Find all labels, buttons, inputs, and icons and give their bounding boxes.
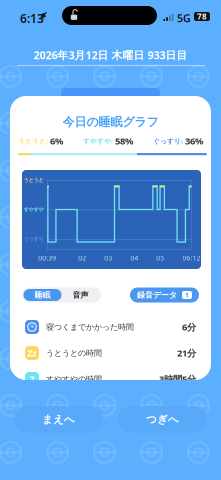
button[interactable]: Zz (10, 340, 211, 366)
staticText: 58% (113, 135, 133, 147)
button[interactable]: Z (10, 366, 211, 392)
staticText: Zz (27, 347, 37, 359)
staticText: 3時間5分 (159, 373, 196, 385)
button[interactable]: 睡眠 (23, 289, 61, 301)
staticText: 6分 (182, 321, 196, 333)
staticText: すやすやの時間 (46, 374, 102, 384)
staticText: 06:12 (182, 254, 200, 262)
staticText: すやすや (23, 206, 43, 213)
button[interactable]: 録音データ (130, 287, 199, 302)
staticText: 04 (130, 254, 138, 262)
staticText: うとうと: (18, 137, 48, 145)
staticText: つぎへ (146, 413, 179, 426)
staticText: 05 (156, 254, 164, 262)
staticText: 36% (183, 135, 203, 147)
staticText: 6:13 (20, 10, 44, 26)
staticText: 録音データ (137, 290, 177, 300)
staticText: 6% (48, 135, 63, 147)
staticText: Z (29, 373, 34, 385)
staticText: すやすや: (83, 137, 113, 145)
staticText: うとうと (23, 177, 43, 183)
staticText: 寝つくまでかかった時間 (46, 322, 134, 332)
button[interactable]: まえへ (14, 406, 103, 433)
staticText: 02 (78, 254, 86, 262)
staticText: ぐっすり (23, 236, 43, 242)
staticText: ぐっすり: (153, 137, 183, 145)
staticText: 5G (177, 11, 191, 25)
button[interactable]: つぎへ (118, 406, 207, 433)
staticText: 音声 (72, 290, 88, 300)
staticText: 1 (185, 291, 189, 299)
staticText: 03 (104, 254, 112, 262)
staticText: 78 (197, 11, 207, 22)
staticText: 今日の睡眠グラフ (62, 115, 158, 129)
staticText: まえへ (42, 413, 75, 426)
staticText: 睡眠 (34, 290, 50, 300)
button[interactable]: 寝つくまでかかった時間 (10, 314, 211, 340)
staticText: 00:39 (38, 254, 56, 262)
button[interactable]: 音声 (61, 289, 99, 301)
staticText: 21分 (177, 347, 196, 359)
staticText: 2026年3月12日 木曜日 933日目 (33, 48, 187, 62)
staticText: うとうとの時間 (46, 348, 102, 358)
